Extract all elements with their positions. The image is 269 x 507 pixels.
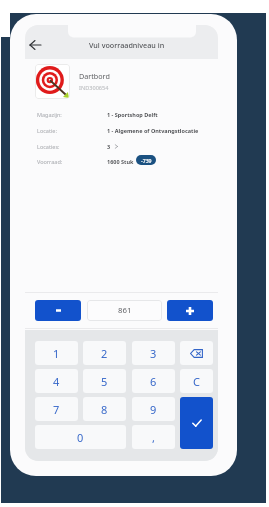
staticText: 5 <box>101 374 108 389</box>
staticText: 1600 Stuk <box>107 158 134 165</box>
staticText: 6 <box>150 374 157 389</box>
staticText: 2 <box>101 346 108 361</box>
staticText: Magazijn: <box>37 111 62 118</box>
staticText: 9 <box>150 402 157 417</box>
staticText: 0 <box>77 430 84 445</box>
staticText: 1 - Algemene of Ontvangstlocatie <box>107 127 199 134</box>
staticText: 861 <box>118 305 132 316</box>
staticText: Locaties: <box>37 143 60 150</box>
button[interactable]: Confirm <box>180 397 213 449</box>
button[interactable]: 6 <box>132 369 175 393</box>
staticText: -739 <box>141 157 152 164</box>
staticText: Dartbord <box>79 71 110 81</box>
staticText: 1 - Sportshop Delft <box>107 111 158 118</box>
button[interactable]: 5 <box>83 369 126 393</box>
button[interactable]: Backspace <box>180 341 213 365</box>
button[interactable]: Decrease <box>35 300 81 321</box>
button[interactable]: Increase <box>167 300 213 321</box>
button[interactable]: 9 <box>132 397 175 421</box>
staticText: , <box>152 430 155 445</box>
button[interactable]: 4 <box>35 369 78 393</box>
staticText: 4 <box>53 374 60 389</box>
button[interactable]: C <box>180 369 213 393</box>
staticText: Vul voorraadniveau in <box>89 40 165 50</box>
staticText: 3 <box>107 143 111 150</box>
button[interactable]: 0 <box>35 425 126 449</box>
staticText: Locatie: <box>37 127 57 134</box>
staticText: 7 <box>53 402 60 417</box>
button[interactable]: 861 <box>87 300 162 321</box>
button[interactable]: 7 <box>35 397 78 421</box>
button[interactable]: 2 <box>83 341 126 365</box>
button[interactable]: 8 <box>83 397 126 421</box>
staticText: Voorraad: <box>37 158 63 165</box>
staticText: IND300654 <box>79 84 109 92</box>
staticText: C <box>193 374 200 389</box>
staticText: 8 <box>101 402 108 417</box>
staticText: 1 <box>53 346 60 361</box>
button[interactable]: 1 <box>35 341 78 365</box>
button[interactable]: , <box>132 425 175 449</box>
button[interactable]: 3 <box>132 341 175 365</box>
button[interactable]: Back <box>27 36 45 54</box>
staticText: 3 <box>150 346 157 361</box>
button[interactable]: 3 <box>107 143 119 150</box>
